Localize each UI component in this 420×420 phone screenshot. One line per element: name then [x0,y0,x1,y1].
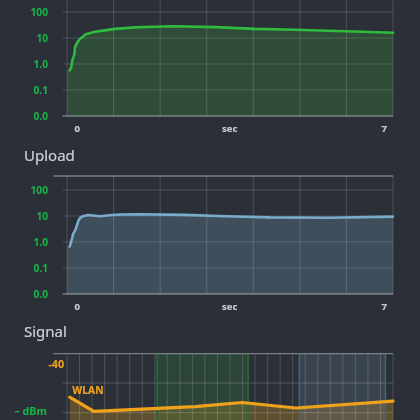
button[interactable] [0,0,420,420]
